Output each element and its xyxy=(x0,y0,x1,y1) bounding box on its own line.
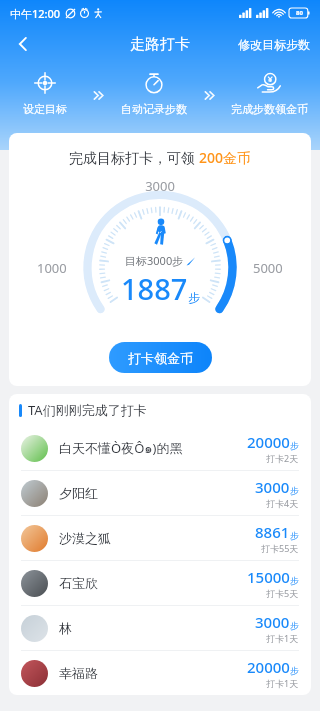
staticText: 林 xyxy=(59,620,72,636)
staticText: 15000 xyxy=(247,567,290,587)
staticText: 步 xyxy=(290,575,299,586)
staticText: 步 xyxy=(290,530,299,541)
staticText: 完成目标打卡，可领 xyxy=(69,148,199,167)
staticText: 打卡55天 xyxy=(261,542,299,554)
staticText: 步 xyxy=(188,290,200,305)
staticText: 1887 xyxy=(121,269,188,308)
staticText: 完成步数领金币 xyxy=(231,102,308,116)
button[interactable]: Back xyxy=(6,27,40,61)
staticText: 3000 xyxy=(9,177,311,195)
staticText: 8861 xyxy=(255,522,290,542)
button[interactable]: 石宝欣 xyxy=(9,561,311,605)
button[interactable] xyxy=(186,256,196,266)
button[interactable]: 夕阳红 xyxy=(9,471,311,515)
staticText: 目标3000步 xyxy=(125,253,184,268)
staticText: 步 xyxy=(290,665,299,676)
staticText: 打卡2天 xyxy=(266,452,299,464)
staticText: 20000 xyxy=(247,657,290,677)
staticText: 中午12:00 xyxy=(10,6,61,21)
button[interactable]: 沙漠之狐 xyxy=(9,516,311,560)
staticText: 3000 xyxy=(255,612,290,632)
staticText: 200金币 xyxy=(199,148,252,167)
staticText: 打卡4天 xyxy=(266,497,299,509)
staticText: 20000 xyxy=(247,432,290,452)
staticText: 自动记录步数 xyxy=(121,102,187,116)
staticText: 夕阳红 xyxy=(59,485,98,501)
staticText: 步 xyxy=(290,440,299,451)
staticText: 沙漠之狐 xyxy=(59,530,111,546)
staticText: 1000 xyxy=(37,259,67,277)
staticText: 设定目标 xyxy=(23,102,67,116)
button[interactable]: 白天不懂Ò夜Ô๑)的黑 xyxy=(9,426,311,470)
staticText: 打卡5天 xyxy=(266,587,299,599)
staticText: 步 xyxy=(290,620,299,631)
staticText: 80 xyxy=(296,9,303,17)
button[interactable]: 幸福路 xyxy=(9,651,311,695)
staticText: 打卡1天 xyxy=(266,677,299,689)
button[interactable]: 修改目标步数 xyxy=(238,37,310,52)
staticText: TA们刚刚完成了打卡 xyxy=(28,401,147,419)
staticText: 步 xyxy=(290,485,299,496)
staticText: 5000 xyxy=(253,259,283,277)
staticText: 修改目标步数 xyxy=(238,37,310,52)
staticText: 3000 xyxy=(255,477,290,497)
staticText: 白天不懂Ò夜Ô๑)的黑 xyxy=(59,438,183,459)
staticText: 走路打卡 xyxy=(130,35,190,54)
button[interactable]: 打卡领金币 xyxy=(109,342,212,373)
button[interactable]: 林 xyxy=(9,606,311,650)
staticText: 石宝欣 xyxy=(59,575,98,591)
staticText: 幸福路 xyxy=(59,665,98,681)
staticText: 打卡领金币 xyxy=(128,350,193,366)
staticText: 打卡1天 xyxy=(266,632,299,644)
